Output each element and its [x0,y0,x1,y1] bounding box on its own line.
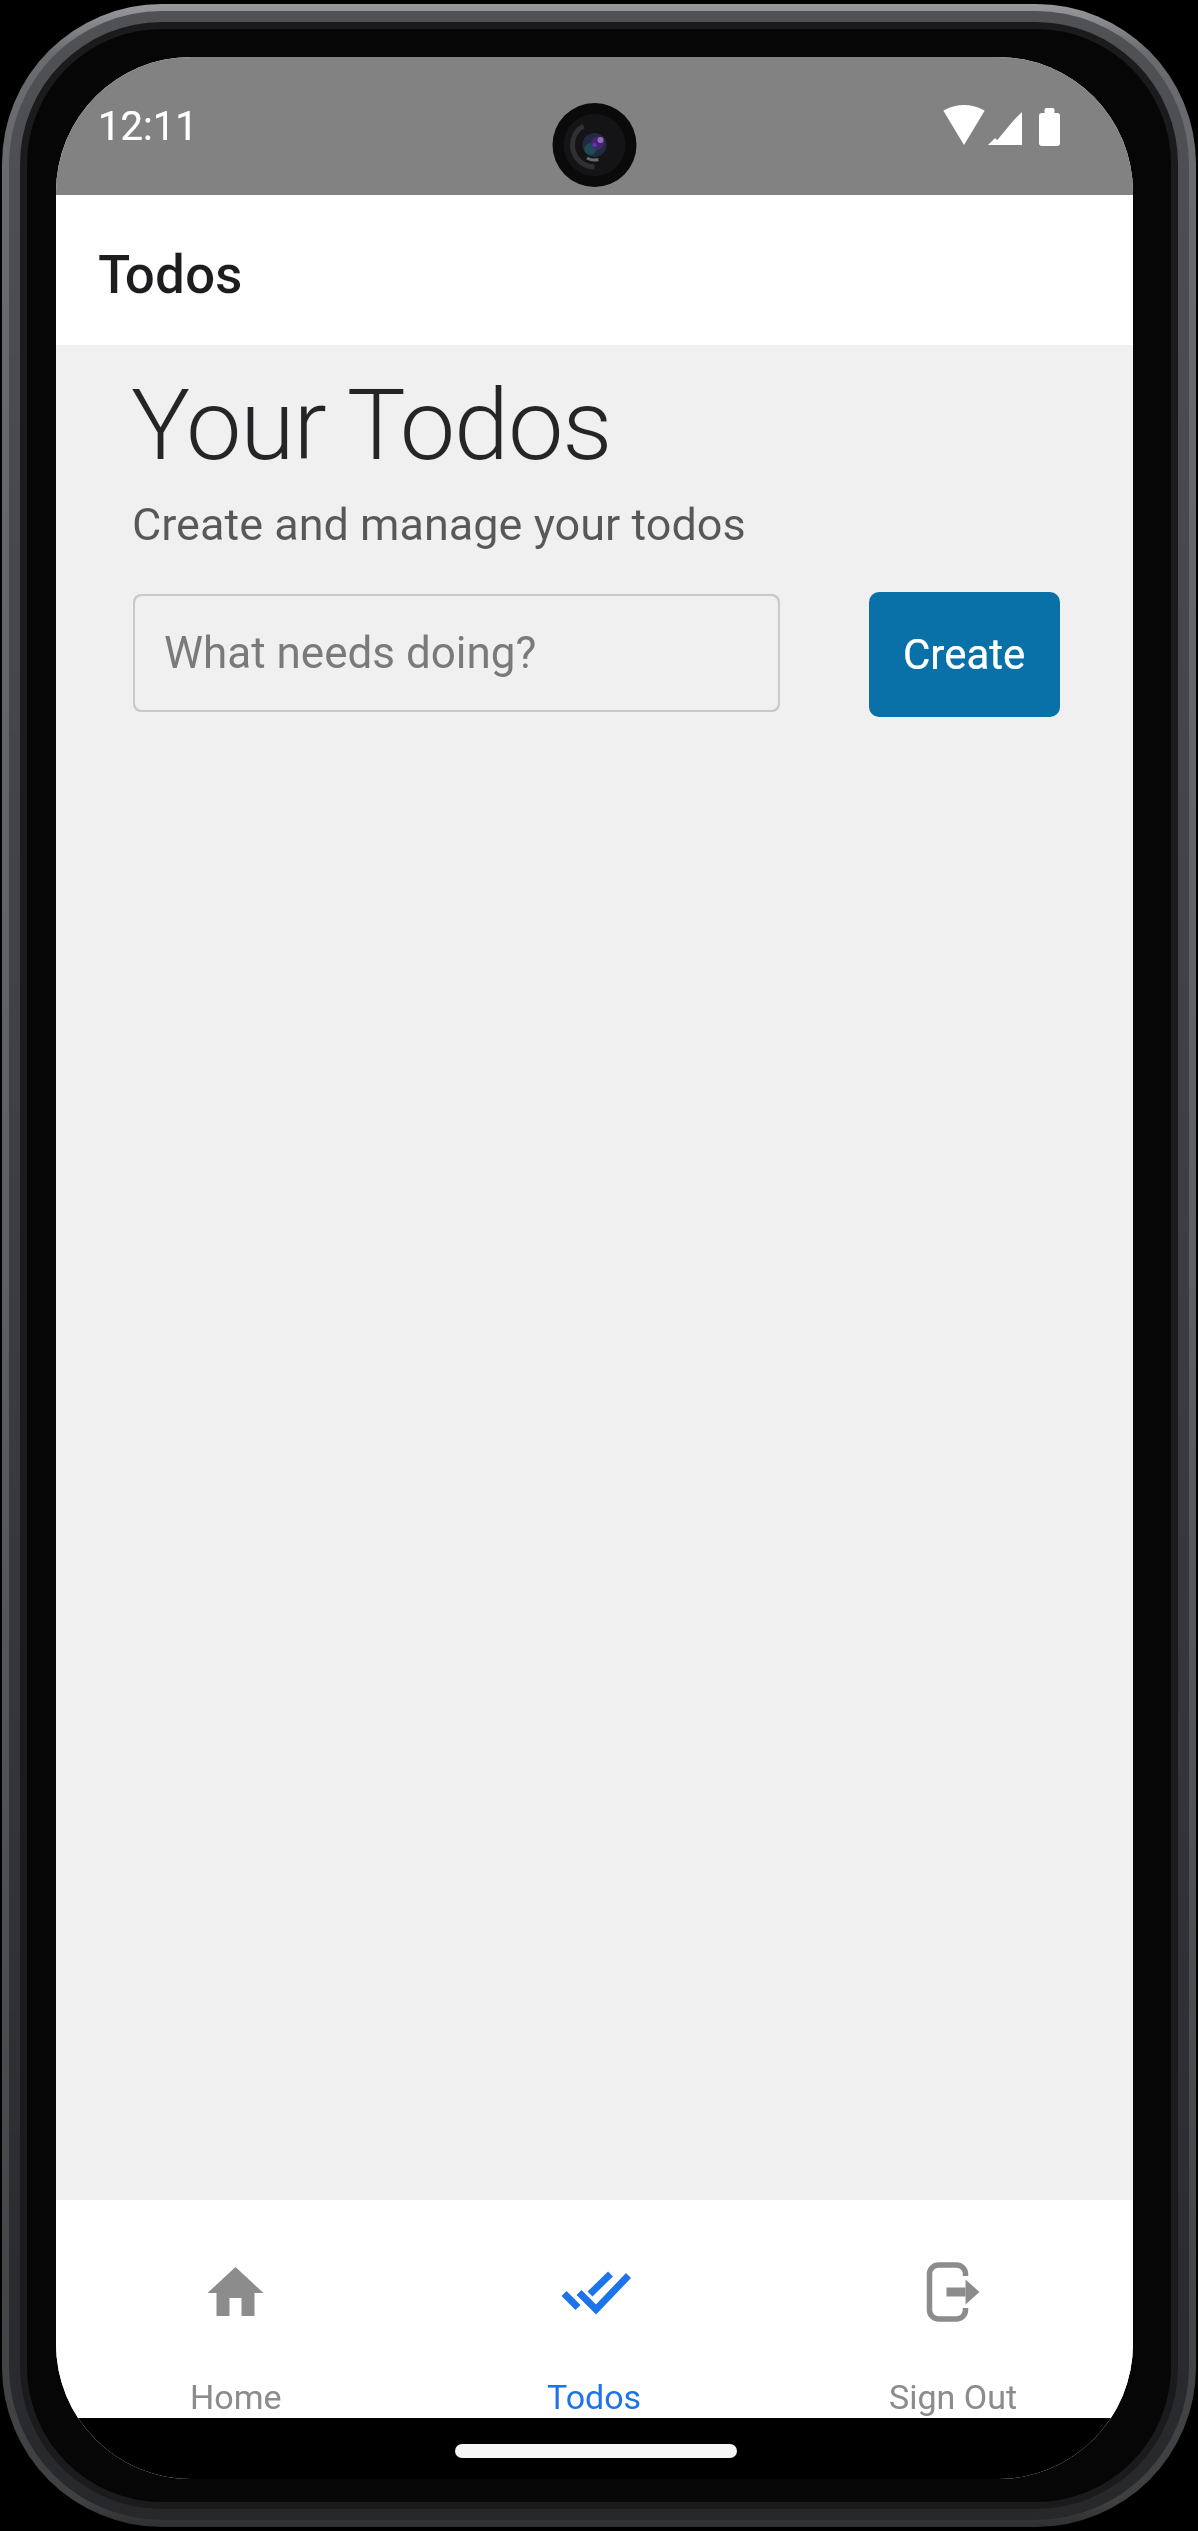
staticText: Create and manage your todos [132,498,746,551]
staticText: What needs doing? [164,627,537,679]
staticText: Sign Out [889,2377,1018,2417]
staticText: Todos [547,2377,642,2417]
button[interactable]: Sign Out [774,2200,1133,2418]
staticText: 12:11 [98,103,198,150]
staticText: Todos [98,244,243,306]
button[interactable]: Todos [415,2200,774,2418]
button[interactable]: What needs doing? [133,594,780,712]
staticText: Your Todos [131,367,612,483]
staticText: Home [190,2377,282,2417]
button[interactable]: Home [56,2200,415,2418]
staticText: Create [903,630,1026,679]
button[interactable]: Create [869,592,1060,717]
